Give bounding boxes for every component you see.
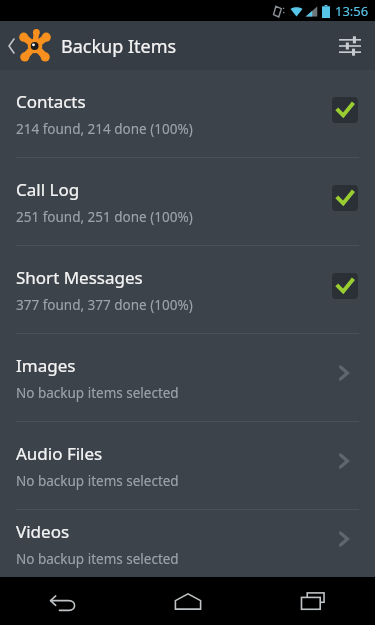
staticText: Videos: [16, 520, 70, 543]
staticText: Audio Files: [16, 442, 103, 465]
button[interactable]: Backed up: [332, 97, 358, 123]
button[interactable]: Backed up: [332, 185, 358, 211]
staticText: Call Log: [16, 178, 80, 201]
staticText: 251 found, 251 done (100%): [16, 208, 193, 226]
button[interactable]: Backup Items: [0, 23, 189, 69]
staticText: No backup items selected: [16, 472, 179, 490]
button[interactable]: Call Log: [0, 158, 375, 245]
staticText: No backup items selected: [16, 550, 179, 568]
staticText: 13:56: [335, 2, 369, 20]
button[interactable]: Recent apps: [250, 577, 375, 625]
staticText: No backup items selected: [16, 384, 179, 402]
staticText: 377 found, 377 done (100%): [16, 296, 193, 314]
staticText: Contacts: [16, 90, 86, 113]
button[interactable]: Open Videos: [331, 526, 357, 552]
staticText: Short Messages: [16, 266, 143, 289]
staticText: Backup Items: [61, 34, 177, 59]
button[interactable]: Home: [125, 577, 250, 625]
staticText: 214 found, 214 done (100%): [16, 120, 193, 138]
button[interactable]: Short Messages: [0, 246, 375, 333]
button[interactable]: Backed up: [332, 273, 358, 299]
button[interactable]: Settings: [325, 21, 375, 70]
button[interactable]: Open Images: [331, 360, 357, 386]
button[interactable]: Videos: [0, 510, 375, 577]
button[interactable]: Open Audio Files: [331, 448, 357, 474]
button[interactable]: Contacts: [0, 70, 375, 157]
button[interactable]: Images: [0, 334, 375, 421]
staticText: Images: [16, 354, 76, 377]
button[interactable]: Audio Files: [0, 422, 375, 509]
button[interactable]: Back: [0, 577, 125, 625]
